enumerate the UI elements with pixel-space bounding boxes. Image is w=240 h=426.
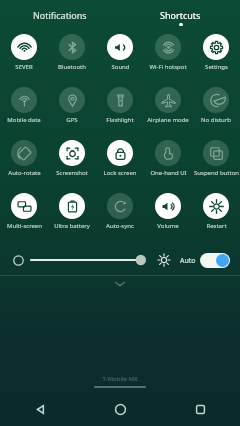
button[interactable]: Restart — [192, 191, 240, 230]
button[interactable]: Low brightness — [10, 252, 26, 268]
button[interactable]: Volume — [144, 191, 192, 230]
button[interactable]: Wi-Fi hotspot — [144, 32, 192, 71]
button[interactable]: Suspend button — [192, 138, 240, 177]
staticText: Settings — [205, 63, 228, 71]
button[interactable]: Auto-sync — [96, 191, 144, 230]
staticText: Auto-sync — [106, 222, 134, 230]
staticText: Restart — [206, 222, 227, 230]
button[interactable]: Sound — [96, 32, 144, 71]
staticText: Wi-Fi hotspot — [149, 63, 187, 71]
button[interactable]: High brightness — [155, 251, 173, 269]
staticText: Multi-screen — [7, 222, 42, 230]
staticText: Shortcuts — [160, 9, 201, 21]
button[interactable]: Multi-screen — [0, 191, 48, 230]
staticText: Volume — [157, 222, 179, 230]
button[interactable]: Home — [80, 393, 160, 426]
button[interactable]: One-hand UI — [144, 138, 192, 177]
button[interactable]: Airplane mode — [144, 85, 192, 124]
button[interactable]: Mobile data — [0, 85, 48, 124]
staticText: Suspend button — [194, 169, 239, 177]
staticText: Lock screen — [103, 169, 137, 177]
staticText: No disturb — [201, 116, 231, 124]
staticText: Mobile data — [7, 116, 41, 124]
button[interactable]: Brightness slider — [31, 250, 151, 270]
button[interactable]: Notifications — [0, 0, 120, 26]
button[interactable]: Bluetooth — [48, 32, 96, 71]
button[interactable]: Recent apps — [160, 393, 240, 426]
staticText: GPS — [66, 116, 78, 124]
button[interactable]: Auto-rotate — [0, 138, 48, 177]
staticText: Sound — [111, 63, 130, 71]
staticText: Auto — [180, 256, 196, 266]
staticText: Screenshot — [56, 169, 88, 177]
button[interactable]: Lock screen — [96, 138, 144, 177]
staticText: Notifications — [33, 9, 87, 21]
staticText: Bluetooth — [58, 63, 86, 71]
staticText: Airplane mode — [147, 116, 189, 124]
button[interactable]: Screenshot — [48, 138, 96, 177]
staticText: Auto-rotate — [8, 169, 41, 177]
button[interactable]: Auto — [180, 251, 230, 270]
button[interactable]: No disturb — [192, 85, 240, 124]
button[interactable]: Back — [0, 393, 80, 426]
button[interactable]: GPS — [48, 85, 96, 124]
button[interactable]: Shortcuts — [120, 0, 240, 26]
staticText: One-hand UI — [150, 169, 187, 177]
button[interactable]: Flashlight — [96, 85, 144, 124]
staticText: T-Mobile MX — [0, 375, 240, 383]
button[interactable]: SEVER — [0, 32, 48, 71]
button[interactable]: Collapse panel — [0, 276, 240, 292]
staticText: SEVER — [15, 63, 33, 71]
staticText: Flashlight — [106, 116, 134, 124]
button[interactable]: Settings — [192, 32, 240, 71]
staticText: Ultra battery — [54, 222, 90, 230]
button[interactable]: Ultra battery — [48, 191, 96, 230]
